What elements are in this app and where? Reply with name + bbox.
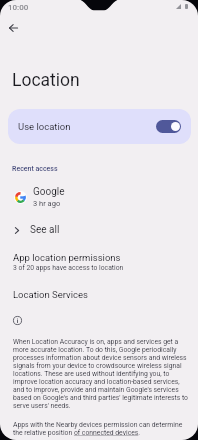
staticText: Recent access bbox=[12, 165, 58, 173]
staticText: Apps with the Nearby devices permission … bbox=[13, 421, 188, 437]
staticText: 3 of 20 apps have access to location bbox=[13, 264, 124, 272]
staticText: App location permissions bbox=[13, 252, 121, 263]
staticText: 3 hr ago bbox=[33, 199, 61, 208]
button[interactable]: Use location switch bbox=[156, 120, 181, 133]
staticText: 10:00 bbox=[8, 3, 29, 12]
button[interactable]: Use location bbox=[8, 109, 191, 144]
staticText: When Location Accuracy is on, apps and s… bbox=[13, 338, 188, 410]
button[interactable]: Google bbox=[0, 186, 198, 208]
button[interactable]: App location permissions bbox=[0, 250, 198, 274]
staticText: Use location bbox=[18, 121, 71, 132]
staticText: See all bbox=[30, 224, 60, 236]
staticText: Location Services bbox=[13, 289, 88, 300]
button[interactable]: Back bbox=[2, 17, 24, 39]
button[interactable]: See all bbox=[0, 220, 198, 240]
staticText: Google bbox=[33, 186, 65, 198]
staticText: Location bbox=[12, 70, 80, 91]
